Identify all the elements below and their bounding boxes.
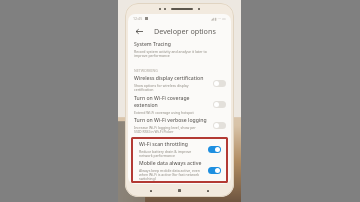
staticText: NETWORKING xyxy=(134,68,158,73)
button[interactable]: Navigation button xyxy=(207,190,209,192)
staticText: Increase Wi-Fi logging level, show per S… xyxy=(134,125,196,134)
button[interactable]: Toggle off xyxy=(213,80,226,87)
button[interactable]: Navigation button xyxy=(178,189,181,192)
staticText: Always keep mobile data active, even whe… xyxy=(139,168,200,181)
staticText: ◢ ▮ ⋯ ▭ xyxy=(211,16,226,21)
button[interactable]: Toggle off xyxy=(213,122,226,129)
button[interactable]: System Tracing xyxy=(128,39,231,60)
button[interactable]: Back xyxy=(134,26,145,37)
staticText: Reduce battery drain & improve network p… xyxy=(139,149,192,158)
button[interactable]: Wireless display certification xyxy=(128,73,231,94)
button[interactable]: Turn on Wi-Fi coverage extension xyxy=(128,94,231,115)
button[interactable]: Toggle off xyxy=(213,101,226,108)
staticText: System Tracing xyxy=(134,41,171,48)
staticText: Turn on Wi-Fi coverage extension xyxy=(134,95,209,109)
staticText: Wi-Fi scan throttling xyxy=(139,141,188,148)
staticText: Wireless display certification xyxy=(134,75,204,82)
button[interactable]: Toggle on xyxy=(208,146,221,153)
staticText: Turn on Wi-Fi verbose logging xyxy=(134,117,207,124)
staticText: Show options for wireless display certif… xyxy=(134,83,189,92)
staticText: Developer options xyxy=(154,26,216,36)
staticText: 12:45 xyxy=(133,16,143,21)
button[interactable]: Toggle on xyxy=(208,167,221,174)
staticText: Record system activity and analyse it la… xyxy=(134,49,207,58)
button[interactable]: Navigation button xyxy=(150,190,152,192)
button[interactable]: Mobile data always active xyxy=(133,160,226,181)
button[interactable]: Turn on Wi-Fi verbose logging xyxy=(128,115,231,136)
staticText: Mobile data always active xyxy=(139,160,202,167)
button[interactable]: Wi-Fi scan throttling xyxy=(133,139,226,160)
staticText: Extend Wi-Fi coverage using hotspot xyxy=(134,110,194,115)
